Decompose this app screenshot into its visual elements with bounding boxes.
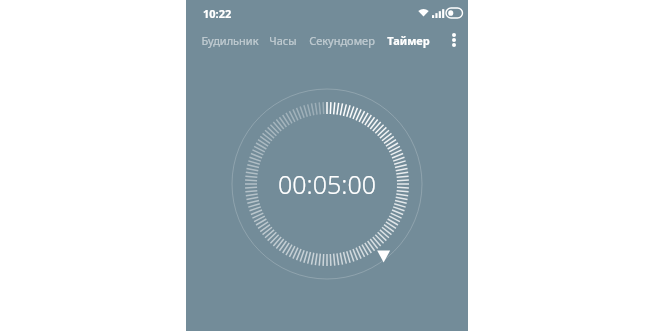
button[interactable]: Будильник	[201, 29, 259, 52]
button[interactable]: Таймер	[387, 29, 430, 52]
button[interactable]: Часы	[269, 29, 297, 52]
staticText: Таймер	[387, 33, 430, 48]
button[interactable]: 00:05:00	[204, 61, 450, 307]
staticText: Секундомер	[309, 33, 375, 48]
staticText: 00:05:00	[278, 167, 376, 201]
button[interactable]: More options	[445, 28, 463, 52]
staticText: 10:22	[203, 6, 232, 21]
staticText: Будильник	[201, 33, 259, 48]
button[interactable]: Секундомер	[309, 29, 375, 52]
staticText: Часы	[269, 33, 297, 48]
